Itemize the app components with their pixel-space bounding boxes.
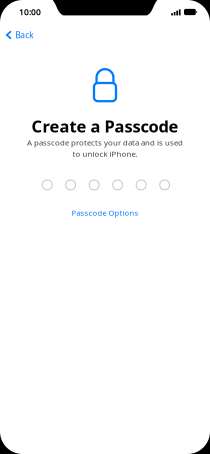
staticText: Create a Passcode xyxy=(31,115,178,137)
staticText: A passcode protects your data and is use… xyxy=(27,137,183,148)
staticText: 10:00 xyxy=(19,6,41,18)
staticText: Back xyxy=(15,29,33,41)
staticText: Passcode Options xyxy=(71,208,138,218)
button[interactable]: Passcode Options xyxy=(61,204,148,222)
button[interactable]: Back xyxy=(0,23,33,43)
staticText: to unlock iPhone. xyxy=(72,148,137,159)
